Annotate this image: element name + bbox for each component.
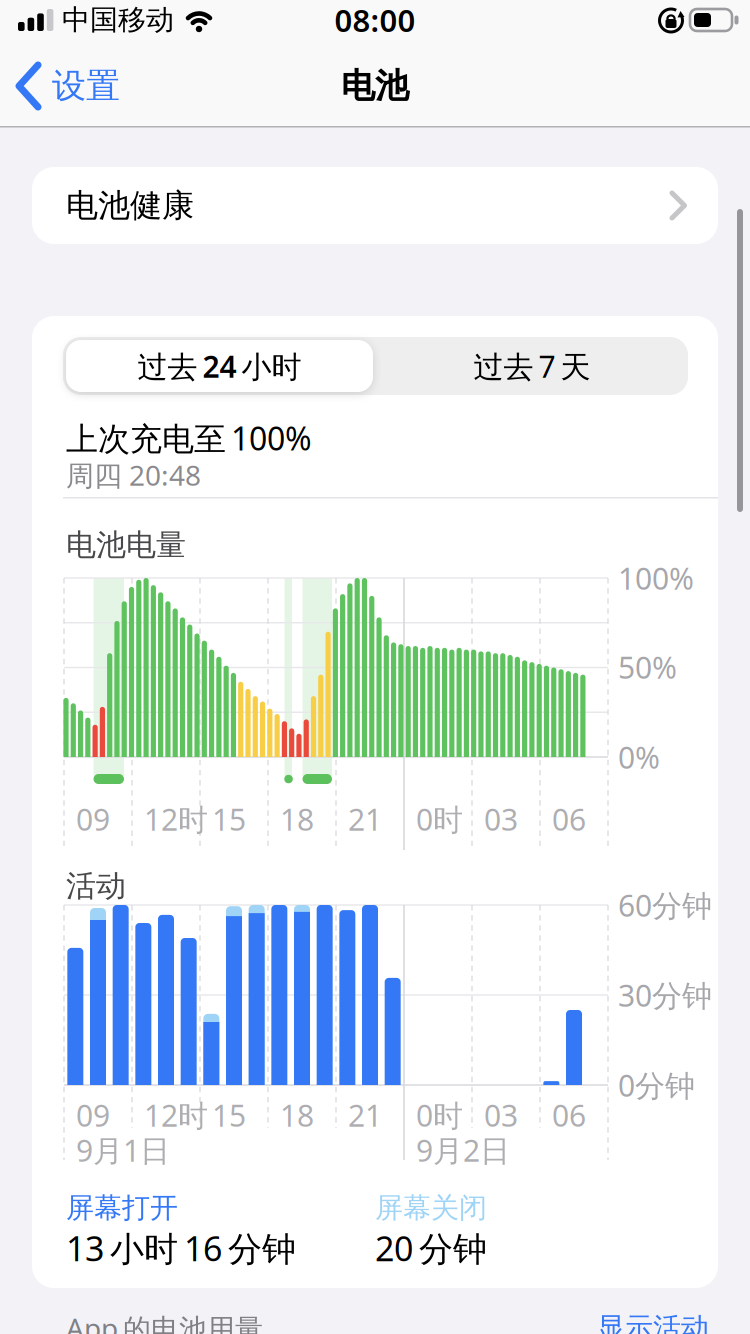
staticText: 0% bbox=[618, 737, 660, 777]
staticText: 06 bbox=[552, 799, 586, 839]
staticText: 电池 bbox=[341, 65, 409, 107]
button[interactable]: 显示活动 bbox=[597, 1310, 709, 1334]
staticText: 18 bbox=[280, 1095, 314, 1135]
staticText: 50% bbox=[618, 647, 677, 687]
staticText: 18 bbox=[280, 799, 314, 839]
staticText: 过去 7 天 bbox=[473, 346, 590, 386]
staticText: 0时 bbox=[416, 799, 463, 839]
staticText: 03 bbox=[484, 1095, 518, 1135]
staticText: 100% bbox=[618, 558, 694, 598]
staticText: 03 bbox=[484, 799, 518, 839]
button[interactable]: 过去 24 小时 bbox=[66, 340, 373, 392]
staticText: 上次充电至 100% bbox=[66, 416, 312, 460]
staticText: 08:00 bbox=[334, 0, 415, 41]
staticText: 显示活动 bbox=[597, 1310, 709, 1334]
staticText: 15 bbox=[212, 1095, 246, 1135]
staticText: 13 小时 16 分钟 bbox=[66, 1225, 296, 1271]
staticText: 电池电量 bbox=[66, 526, 186, 564]
staticText: 09 bbox=[76, 1095, 110, 1135]
staticText: 30分钟 bbox=[618, 975, 712, 1015]
staticText: 9月2日 bbox=[416, 1130, 510, 1170]
staticText: 中国移动 bbox=[62, 2, 174, 38]
staticText: 60分钟 bbox=[618, 885, 712, 925]
staticText: 9月1日 bbox=[76, 1130, 170, 1170]
staticText: App 的电池用量 bbox=[66, 1309, 263, 1334]
staticText: 0分钟 bbox=[618, 1065, 695, 1105]
staticText: 12时 bbox=[144, 799, 208, 839]
staticText: 过去 24 小时 bbox=[137, 346, 301, 386]
staticText: 电池健康 bbox=[66, 185, 194, 226]
button[interactable]: 设置 bbox=[14, 56, 150, 116]
staticText: 06 bbox=[552, 1095, 586, 1135]
staticText: 屏幕打开 bbox=[66, 1190, 178, 1226]
staticText: 15 bbox=[212, 799, 246, 839]
staticText: 屏幕关闭 bbox=[375, 1190, 487, 1226]
staticText: 09 bbox=[76, 799, 110, 839]
staticText: 21 bbox=[348, 799, 382, 839]
staticText: 12时 bbox=[144, 1095, 208, 1135]
staticText: 设置 bbox=[52, 65, 120, 107]
button[interactable]: 过去 7 天 bbox=[376, 337, 688, 395]
staticText: 0时 bbox=[416, 1095, 463, 1135]
staticText: 活动 bbox=[66, 867, 126, 905]
staticText: 21 bbox=[348, 1095, 382, 1135]
staticText: 周四 20:48 bbox=[66, 456, 201, 494]
staticText: 20 分钟 bbox=[375, 1225, 487, 1271]
button[interactable]: 电池健康 bbox=[32, 167, 718, 244]
